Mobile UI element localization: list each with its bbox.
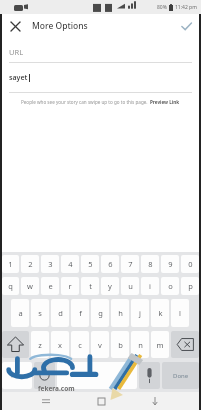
button[interactable]: l xyxy=(171,299,189,327)
staticText: 7 xyxy=(128,259,133,269)
button[interactable]: w xyxy=(21,277,39,295)
staticText: l xyxy=(179,308,181,318)
staticText: d xyxy=(58,308,63,318)
staticText: fekera.com xyxy=(38,384,75,393)
button[interactable]: r xyxy=(61,277,79,295)
button[interactable]: q xyxy=(2,277,19,295)
button[interactable]: o xyxy=(161,277,179,295)
staticText: 8 xyxy=(148,259,153,269)
button[interactable]: 3 xyxy=(41,255,59,273)
button[interactable]: 2 xyxy=(21,255,39,273)
staticText: 3 xyxy=(48,259,53,269)
button[interactable]: u xyxy=(121,277,139,295)
button[interactable]: k xyxy=(151,299,169,327)
staticText: v xyxy=(98,340,102,350)
staticText: x xyxy=(58,340,62,350)
staticText: k xyxy=(158,308,163,318)
staticText: e xyxy=(48,281,53,291)
button[interactable]: d xyxy=(51,299,69,327)
staticText: a xyxy=(18,308,23,318)
staticText: More Options xyxy=(32,20,88,32)
staticText: 80% xyxy=(157,4,167,11)
staticText: j xyxy=(139,308,141,318)
button[interactable]: Backspace xyxy=(171,331,199,358)
button[interactable]: Voice input xyxy=(139,362,160,389)
button[interactable]: Confirm xyxy=(177,17,195,35)
staticText: Done xyxy=(173,372,189,380)
button[interactable]: v xyxy=(91,331,109,358)
staticText: i xyxy=(149,281,151,291)
staticText: sayet xyxy=(9,73,28,83)
button[interactable]: Home xyxy=(92,392,110,410)
staticText: b xyxy=(118,340,123,350)
staticText: 6 xyxy=(108,259,113,269)
staticText: q xyxy=(8,281,13,291)
button[interactable]: 7 xyxy=(121,255,139,273)
button[interactable] xyxy=(57,362,137,389)
button[interactable]: 4 xyxy=(61,255,79,273)
staticText: t xyxy=(89,281,92,291)
button[interactable]: s xyxy=(31,299,49,327)
button[interactable]: z xyxy=(31,331,49,358)
button[interactable]: y xyxy=(101,277,119,295)
button[interactable]: Preview Link xyxy=(150,99,180,105)
staticText: n xyxy=(138,340,143,350)
button[interactable]: Emoji xyxy=(34,362,55,389)
staticText: u xyxy=(128,281,133,291)
button[interactable]: m xyxy=(151,331,169,358)
staticText: 11:42 pm xyxy=(175,4,197,11)
staticText: f xyxy=(79,308,82,318)
staticText: 5 xyxy=(88,259,93,269)
button[interactable]: Recent apps xyxy=(37,392,55,410)
button[interactable]: e xyxy=(41,277,59,295)
button[interactable]: b xyxy=(111,331,129,358)
button[interactable]: ?123 xyxy=(2,362,32,389)
staticText: People who see your story can swipe up t… xyxy=(21,99,148,105)
staticText: p xyxy=(188,281,193,291)
button[interactable]: 8 xyxy=(141,255,159,273)
button[interactable]: j xyxy=(131,299,149,327)
staticText: z xyxy=(38,340,42,350)
staticText: 4 xyxy=(68,259,73,269)
staticText: r xyxy=(68,281,72,291)
button[interactable]: 5 xyxy=(81,255,99,273)
staticText: 2 xyxy=(28,259,33,269)
button[interactable]: Close xyxy=(6,17,24,35)
button[interactable]: i xyxy=(141,277,159,295)
button[interactable]: a xyxy=(11,299,29,327)
staticText: g xyxy=(98,308,103,318)
button[interactable]: 0 xyxy=(181,255,199,273)
staticText: 1 xyxy=(8,259,13,269)
staticText: Preview Link xyxy=(150,99,180,105)
button[interactable]: 1 xyxy=(2,255,19,273)
staticText: m xyxy=(156,340,164,350)
button[interactable]: Back xyxy=(146,392,164,410)
staticText: y xyxy=(108,281,112,291)
button[interactable]: t xyxy=(81,277,99,295)
button[interactable]: 9 xyxy=(161,255,179,273)
button[interactable]: h xyxy=(111,299,129,327)
button[interactable]: g xyxy=(91,299,109,327)
staticText: URL xyxy=(9,47,24,57)
button[interactable]: Shift xyxy=(2,331,29,358)
button[interactable]: n xyxy=(131,331,149,358)
staticText: ?123 xyxy=(11,372,23,379)
button[interactable]: URL xyxy=(9,42,192,62)
button[interactable]: sayet xyxy=(9,69,192,87)
button[interactable]: p xyxy=(181,277,199,295)
button[interactable]: c xyxy=(71,331,89,358)
button[interactable]: f xyxy=(71,299,89,327)
staticText: h xyxy=(118,308,123,318)
staticText: w xyxy=(27,281,33,291)
staticText: c xyxy=(78,340,82,350)
staticText: 9 xyxy=(168,259,173,269)
staticText: s xyxy=(38,308,42,318)
button[interactable]: x xyxy=(51,331,69,358)
staticText: o xyxy=(168,281,173,291)
staticText: 0 xyxy=(188,259,193,269)
button[interactable]: 6 xyxy=(101,255,119,273)
button[interactable]: Done xyxy=(162,362,199,389)
